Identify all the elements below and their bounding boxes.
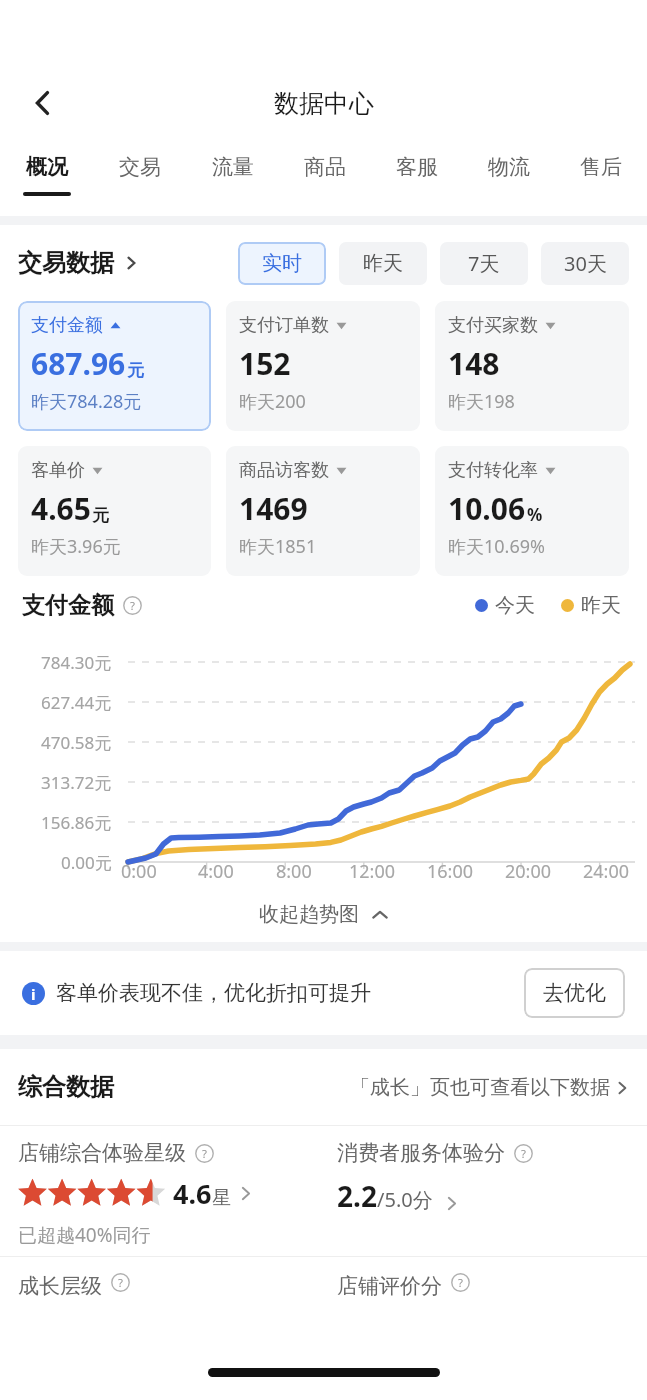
staticText: 综合数据 (18, 1072, 114, 1102)
staticText: 昨天200 (239, 389, 306, 414)
button[interactable]: 收起趋势图 (0, 886, 647, 942)
button[interactable]: 交易 (93, 144, 186, 216)
staticText: 30天 (564, 250, 607, 277)
staticText: 「成长」页也可查看以下数据 (350, 1075, 610, 1100)
staticText: i (31, 984, 36, 1004)
staticText: 20:00 (505, 859, 552, 884)
staticText: 4.6 (173, 1175, 212, 1212)
staticText: 物流 (488, 154, 530, 180)
staticText: 昨天 (581, 593, 621, 618)
button[interactable]: 客服 (371, 144, 463, 216)
staticText: 784.30元 (41, 651, 112, 674)
staticText: 4.65 (31, 488, 91, 529)
staticText: 商品访客数 (239, 459, 329, 482)
staticText: 支付金额 (22, 591, 114, 620)
staticText: 元 (92, 505, 109, 526)
button[interactable]: 商品 (279, 144, 371, 216)
staticText: 昨天784.28元 (31, 389, 142, 414)
staticText: 实时 (262, 251, 302, 276)
staticText: 昨天10.69% (448, 534, 545, 559)
staticText: 概况 (26, 154, 68, 180)
staticText: 支付金额 (31, 314, 103, 337)
staticText: ? (202, 1146, 207, 1162)
staticText: 店铺综合体验星级 (18, 1140, 186, 1166)
button[interactable]: Info (195, 1144, 214, 1163)
button[interactable]: 昨天 (339, 242, 427, 285)
staticText: 24:00 (583, 859, 630, 884)
button[interactable]: Info (451, 1273, 470, 1292)
staticText: 156.86元 (41, 811, 112, 834)
button[interactable]: 实时 (238, 242, 326, 285)
staticText: 152 (239, 343, 291, 384)
staticText: 0.00元 (61, 851, 112, 874)
staticText: 支付订单数 (239, 314, 329, 337)
staticText: 0:00 (121, 859, 157, 884)
button[interactable]: 物流 (463, 144, 555, 216)
button[interactable]: 支付转化率 (435, 446, 629, 576)
staticText: 流量 (212, 154, 254, 180)
staticText: 数据中心 (274, 88, 374, 119)
button[interactable]: 7天 (440, 242, 528, 285)
staticText: 昨天 (363, 251, 403, 276)
button[interactable]: 「成长」页也可查看以下数据 (350, 1075, 629, 1100)
button[interactable]: 消费者服务体验分 (323, 1126, 647, 1256)
button[interactable]: Info (111, 1273, 130, 1292)
staticText: 星 (212, 1186, 231, 1210)
staticText: 店铺评价分 (337, 1273, 442, 1299)
staticText: 收起趋势图 (259, 902, 359, 927)
button[interactable]: 店铺评价分 (323, 1257, 647, 1329)
staticText: 元 (127, 360, 144, 381)
staticText: ? (118, 1275, 123, 1291)
staticText: 2.2 (337, 1177, 377, 1215)
button[interactable]: 流量 (186, 144, 279, 216)
staticText: 交易数据 (18, 248, 114, 278)
staticText: 成长层级 (18, 1273, 102, 1299)
button[interactable]: 商品访客数 (226, 446, 420, 576)
button[interactable]: 支付订单数 (226, 301, 420, 431)
staticText: 12:00 (349, 859, 396, 884)
staticText: 支付买家数 (448, 314, 538, 337)
button[interactable]: 成长层级 (0, 1257, 323, 1329)
button[interactable]: Back (16, 76, 70, 130)
staticText: 支付转化率 (448, 459, 538, 482)
staticText: ? (521, 1146, 526, 1162)
button[interactable]: 交易数据 (18, 248, 138, 278)
button[interactable]: Info (123, 596, 142, 615)
staticText: 313.72元 (41, 771, 112, 794)
button[interactable]: 支付金额 (18, 301, 211, 431)
staticText: 去优化 (543, 980, 606, 1006)
staticText: 商品 (304, 154, 346, 180)
staticText: 7天 (468, 250, 500, 277)
button[interactable]: 客单价 (18, 446, 211, 576)
staticText: ? (458, 1275, 463, 1291)
button[interactable]: 概况 (0, 144, 93, 216)
button[interactable]: 去优化 (524, 968, 625, 1018)
staticText: 4:00 (198, 859, 234, 884)
staticText: 昨天3.96元 (31, 534, 121, 559)
staticText: 消费者服务体验分 (337, 1140, 505, 1166)
button[interactable]: Info (514, 1144, 533, 1163)
staticText: 1469 (239, 488, 308, 529)
staticText: 交易 (119, 154, 161, 180)
button[interactable]: 30天 (541, 242, 629, 285)
staticText: 687.96 (31, 343, 126, 384)
staticText: 8:00 (276, 859, 312, 884)
button[interactable]: 售后 (555, 144, 647, 216)
button[interactable]: 店铺综合体验星级 (0, 1126, 323, 1256)
staticText: 昨天1851 (239, 534, 317, 559)
staticText: 客服 (396, 154, 438, 180)
staticText: ? (130, 598, 135, 614)
staticText: /5.0分 (377, 1186, 433, 1213)
button[interactable]: 支付买家数 (435, 301, 629, 431)
staticText: 已超越40%同行 (18, 1222, 151, 1248)
staticText: 16:00 (427, 859, 474, 884)
staticText: 627.44元 (41, 691, 112, 714)
staticText: 昨天198 (448, 389, 515, 414)
staticText: % (527, 503, 543, 526)
staticText: 售后 (580, 154, 622, 180)
staticText: 10.06 (448, 488, 526, 529)
staticText: 148 (448, 343, 500, 384)
staticText: 客单价 (31, 459, 85, 482)
staticText: 客单价表现不佳，优化折扣可提升 (56, 980, 371, 1006)
staticText: 470.58元 (41, 731, 112, 754)
